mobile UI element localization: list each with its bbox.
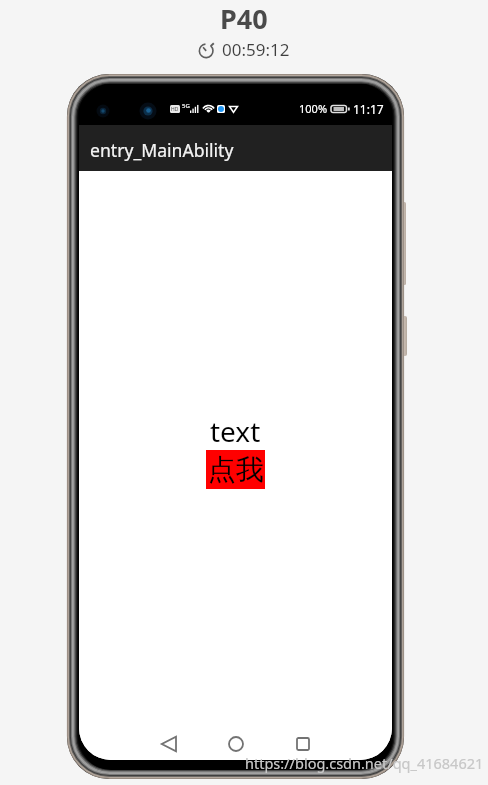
staticText: 00:59:12: [222, 38, 290, 61]
button[interactable]: Back: [145, 724, 191, 760]
staticText: https://blog.csdn.net/qq_41684621: [245, 753, 484, 773]
staticText: entry_MainAbility: [90, 138, 234, 162]
staticText: text: [210, 412, 261, 450]
button[interactable]: Recents: [280, 724, 326, 760]
staticText: 100%: [299, 101, 328, 116]
staticText: 11:17: [353, 101, 384, 117]
staticText: P40: [220, 0, 268, 37]
staticText: 5G: [182, 102, 190, 110]
button[interactable]: entry_MainAbility: [79, 125, 392, 171]
button[interactable]: Home: [213, 724, 259, 760]
staticText: HD: [171, 106, 179, 113]
button[interactable]: 点我: [206, 450, 265, 489]
staticText: 点我: [208, 452, 264, 487]
